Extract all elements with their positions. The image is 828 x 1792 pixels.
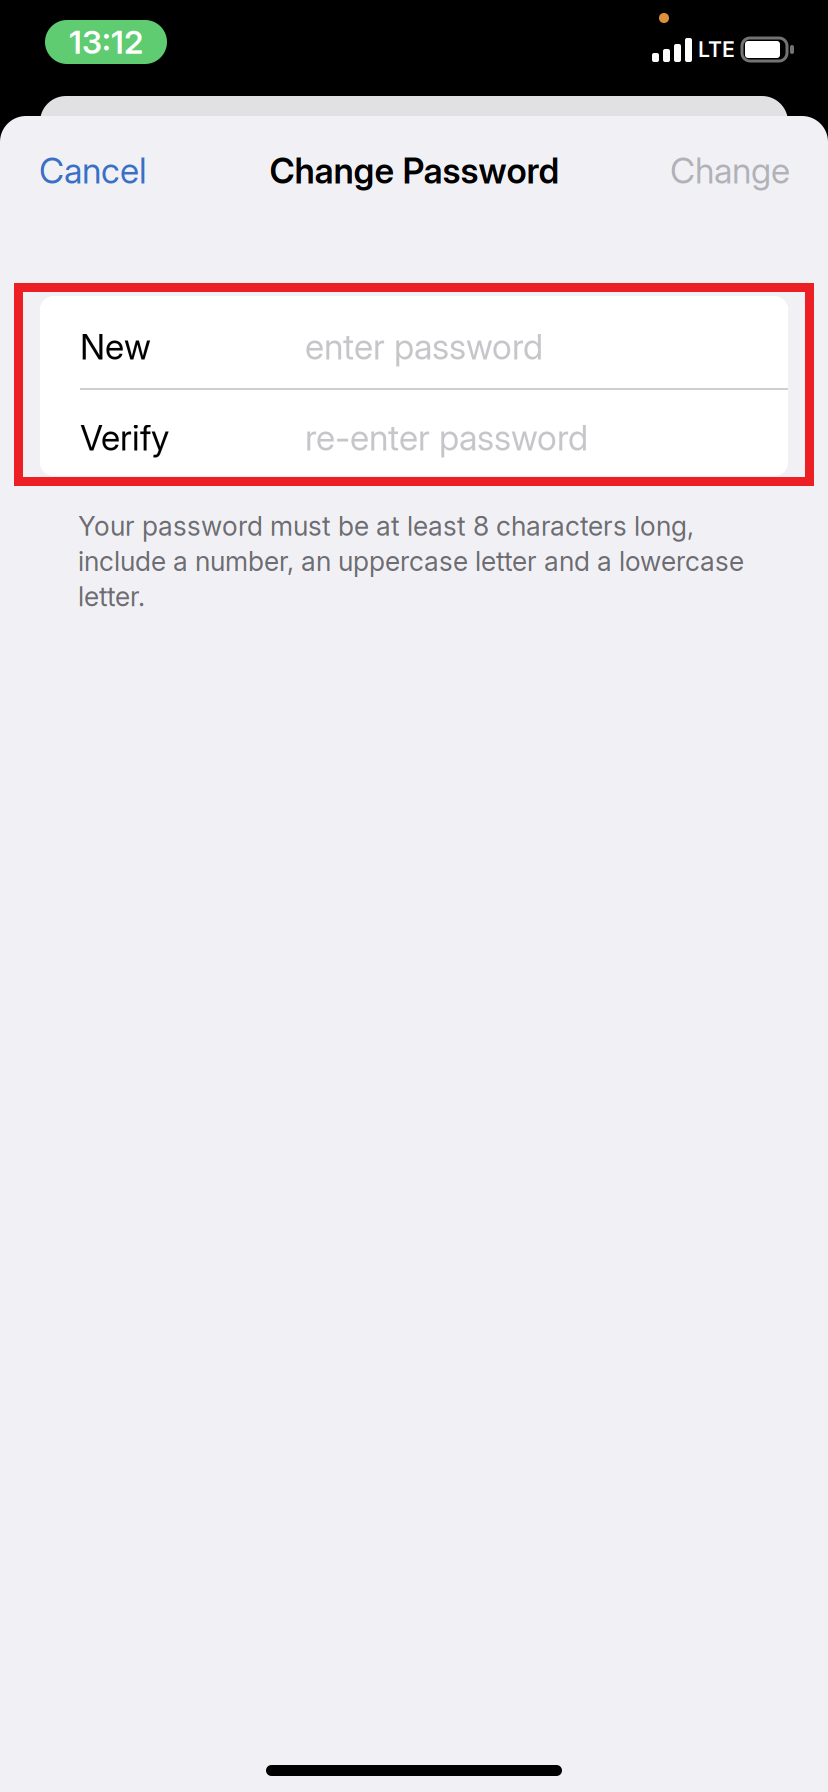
button[interactable]: New — [40, 296, 788, 388]
button[interactable]: Change — [610, 123, 828, 219]
staticText: Verify — [80, 417, 169, 459]
staticText: Cancel — [39, 150, 147, 192]
staticText: New — [80, 326, 151, 368]
button[interactable]: Verify — [40, 390, 788, 476]
staticText: 13:12 — [69, 23, 143, 61]
staticText: LTE — [698, 37, 735, 62]
staticText: re-enter password — [305, 417, 588, 459]
staticText: Your password must be at least 8 charact… — [78, 510, 744, 613]
staticText: Change Password — [269, 150, 559, 192]
staticText: enter password — [305, 326, 543, 368]
button[interactable]: Cancel — [0, 123, 219, 219]
staticText: Change — [670, 150, 790, 192]
